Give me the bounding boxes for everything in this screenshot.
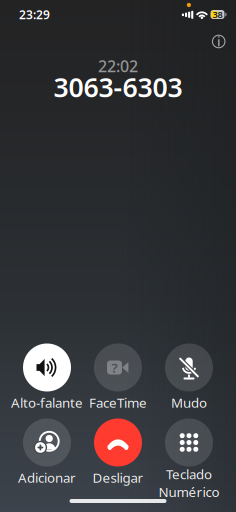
- staticText: 23:29: [19, 6, 50, 22]
- button[interactable]: Teclado: [153, 418, 224, 493]
- staticText: Numérico: [158, 483, 219, 501]
- button[interactable]: ?: [82, 343, 153, 418]
- staticText: ?: [111, 359, 117, 376]
- staticText: 38: [212, 8, 222, 21]
- staticText: Desligar: [92, 469, 143, 486]
- staticText: i: [217, 33, 220, 49]
- staticText: Alto-falante: [11, 394, 83, 411]
- staticText: 3063-6303: [53, 69, 182, 105]
- button[interactable]: Informações da chamada: [206, 28, 232, 54]
- button[interactable]: Alto-falante: [11, 343, 82, 418]
- staticText: Mudo: [171, 394, 207, 411]
- button[interactable]: Desligar: [82, 418, 153, 493]
- staticText: Teclado: [166, 465, 212, 483]
- staticText: 22:02: [98, 55, 138, 77]
- staticText: Adicionar: [18, 469, 76, 486]
- button[interactable]: Mudo: [153, 343, 224, 418]
- button[interactable]: Adicionar: [11, 418, 82, 493]
- staticText: FaceTime: [89, 394, 147, 411]
